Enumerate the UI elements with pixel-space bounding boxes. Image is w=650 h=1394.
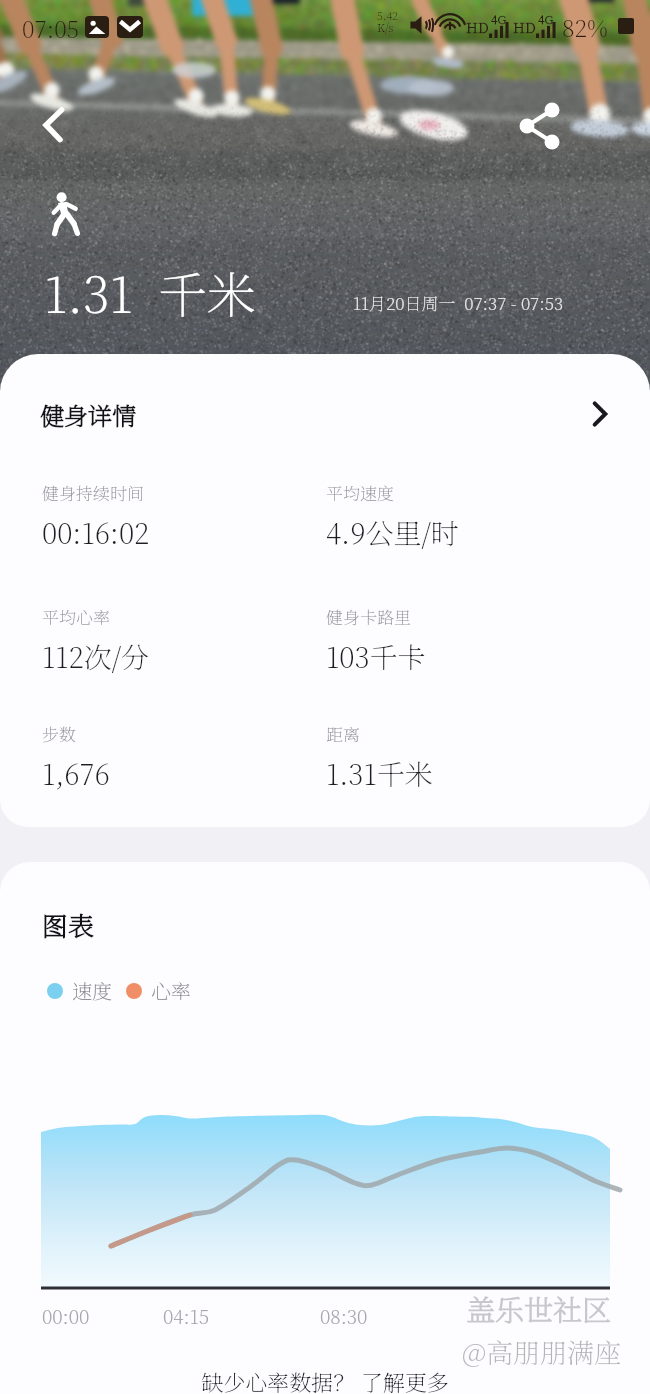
staticText: 00:16:02	[42, 512, 150, 552]
staticText: 距离	[326, 721, 360, 745]
staticText: 速度	[72, 976, 112, 1005]
staticText: 心率	[151, 976, 191, 1005]
staticText: 平均心率	[42, 604, 110, 628]
staticText: 图表	[42, 906, 95, 943]
staticText: 缺少心率数据？ 了解更多	[0, 1366, 650, 1394]
staticText: 1,676	[42, 753, 110, 793]
staticText: 82%	[562, 11, 608, 44]
staticText: 00:00	[42, 1302, 90, 1329]
staticText: HD	[513, 17, 536, 37]
staticText: 103千卡	[326, 636, 426, 676]
staticText: 盖乐世社区	[466, 1288, 612, 1330]
staticText: 1.31 千米	[44, 257, 257, 327]
staticText: 4G	[491, 10, 507, 27]
staticText: 健身详情	[40, 397, 136, 431]
staticText: 112次/分	[42, 636, 150, 676]
staticText: 1.31千米	[326, 753, 433, 793]
button[interactable]: Share	[514, 100, 566, 152]
staticText: 健身持续时间	[42, 480, 144, 504]
staticText: 健身卡路里	[326, 604, 411, 628]
staticText: 4G	[538, 10, 554, 27]
staticText: 平均速度	[326, 480, 394, 504]
staticText: 步数	[42, 721, 76, 745]
button[interactable]: Back	[26, 98, 80, 152]
staticText: 07:05	[22, 12, 80, 45]
staticText: 5.42 K/s	[377, 7, 399, 35]
staticText: @高朋朋满座	[462, 1332, 622, 1371]
button[interactable]: 健身详情	[0, 354, 650, 474]
staticText: 11月20日周一 07:37 - 07:53	[353, 290, 564, 314]
staticText: 08:30	[320, 1302, 368, 1329]
staticText: 4.9公里/时	[326, 512, 459, 552]
staticText: HD	[466, 17, 489, 37]
staticText: 04:15	[163, 1302, 210, 1329]
